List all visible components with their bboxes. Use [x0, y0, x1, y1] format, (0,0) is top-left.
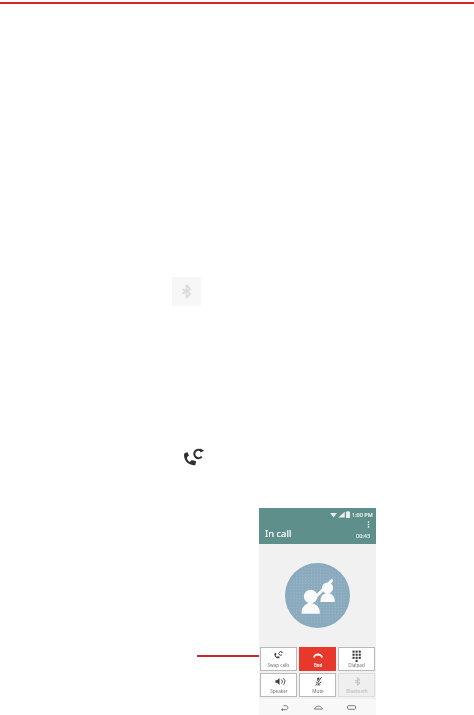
- button[interactable]: Back: [276, 699, 292, 715]
- staticText: Speaker: [270, 688, 288, 694]
- button[interactable]: Recents: [343, 699, 359, 715]
- button[interactable]: Speaker: [260, 673, 297, 697]
- staticText: 1:00 PM: [352, 511, 373, 518]
- staticText: Dialpad: [348, 662, 365, 668]
- staticText: End: [314, 662, 323, 668]
- button[interactable]: Bluetooth: [338, 673, 375, 697]
- staticText: 00:43: [356, 532, 371, 539]
- staticText: Mute: [312, 688, 324, 694]
- button[interactable]: Mute: [299, 673, 336, 697]
- button[interactable]: End: [299, 647, 336, 671]
- staticText: In call: [265, 527, 292, 540]
- button[interactable]: Swap calls: [260, 647, 297, 671]
- button[interactable]: Dialpad: [338, 647, 375, 671]
- staticText: Bluetooth: [346, 688, 368, 694]
- button[interactable]: More options: [363, 519, 373, 529]
- staticText: Swap calls: [267, 662, 290, 668]
- button[interactable]: Home: [310, 699, 326, 715]
